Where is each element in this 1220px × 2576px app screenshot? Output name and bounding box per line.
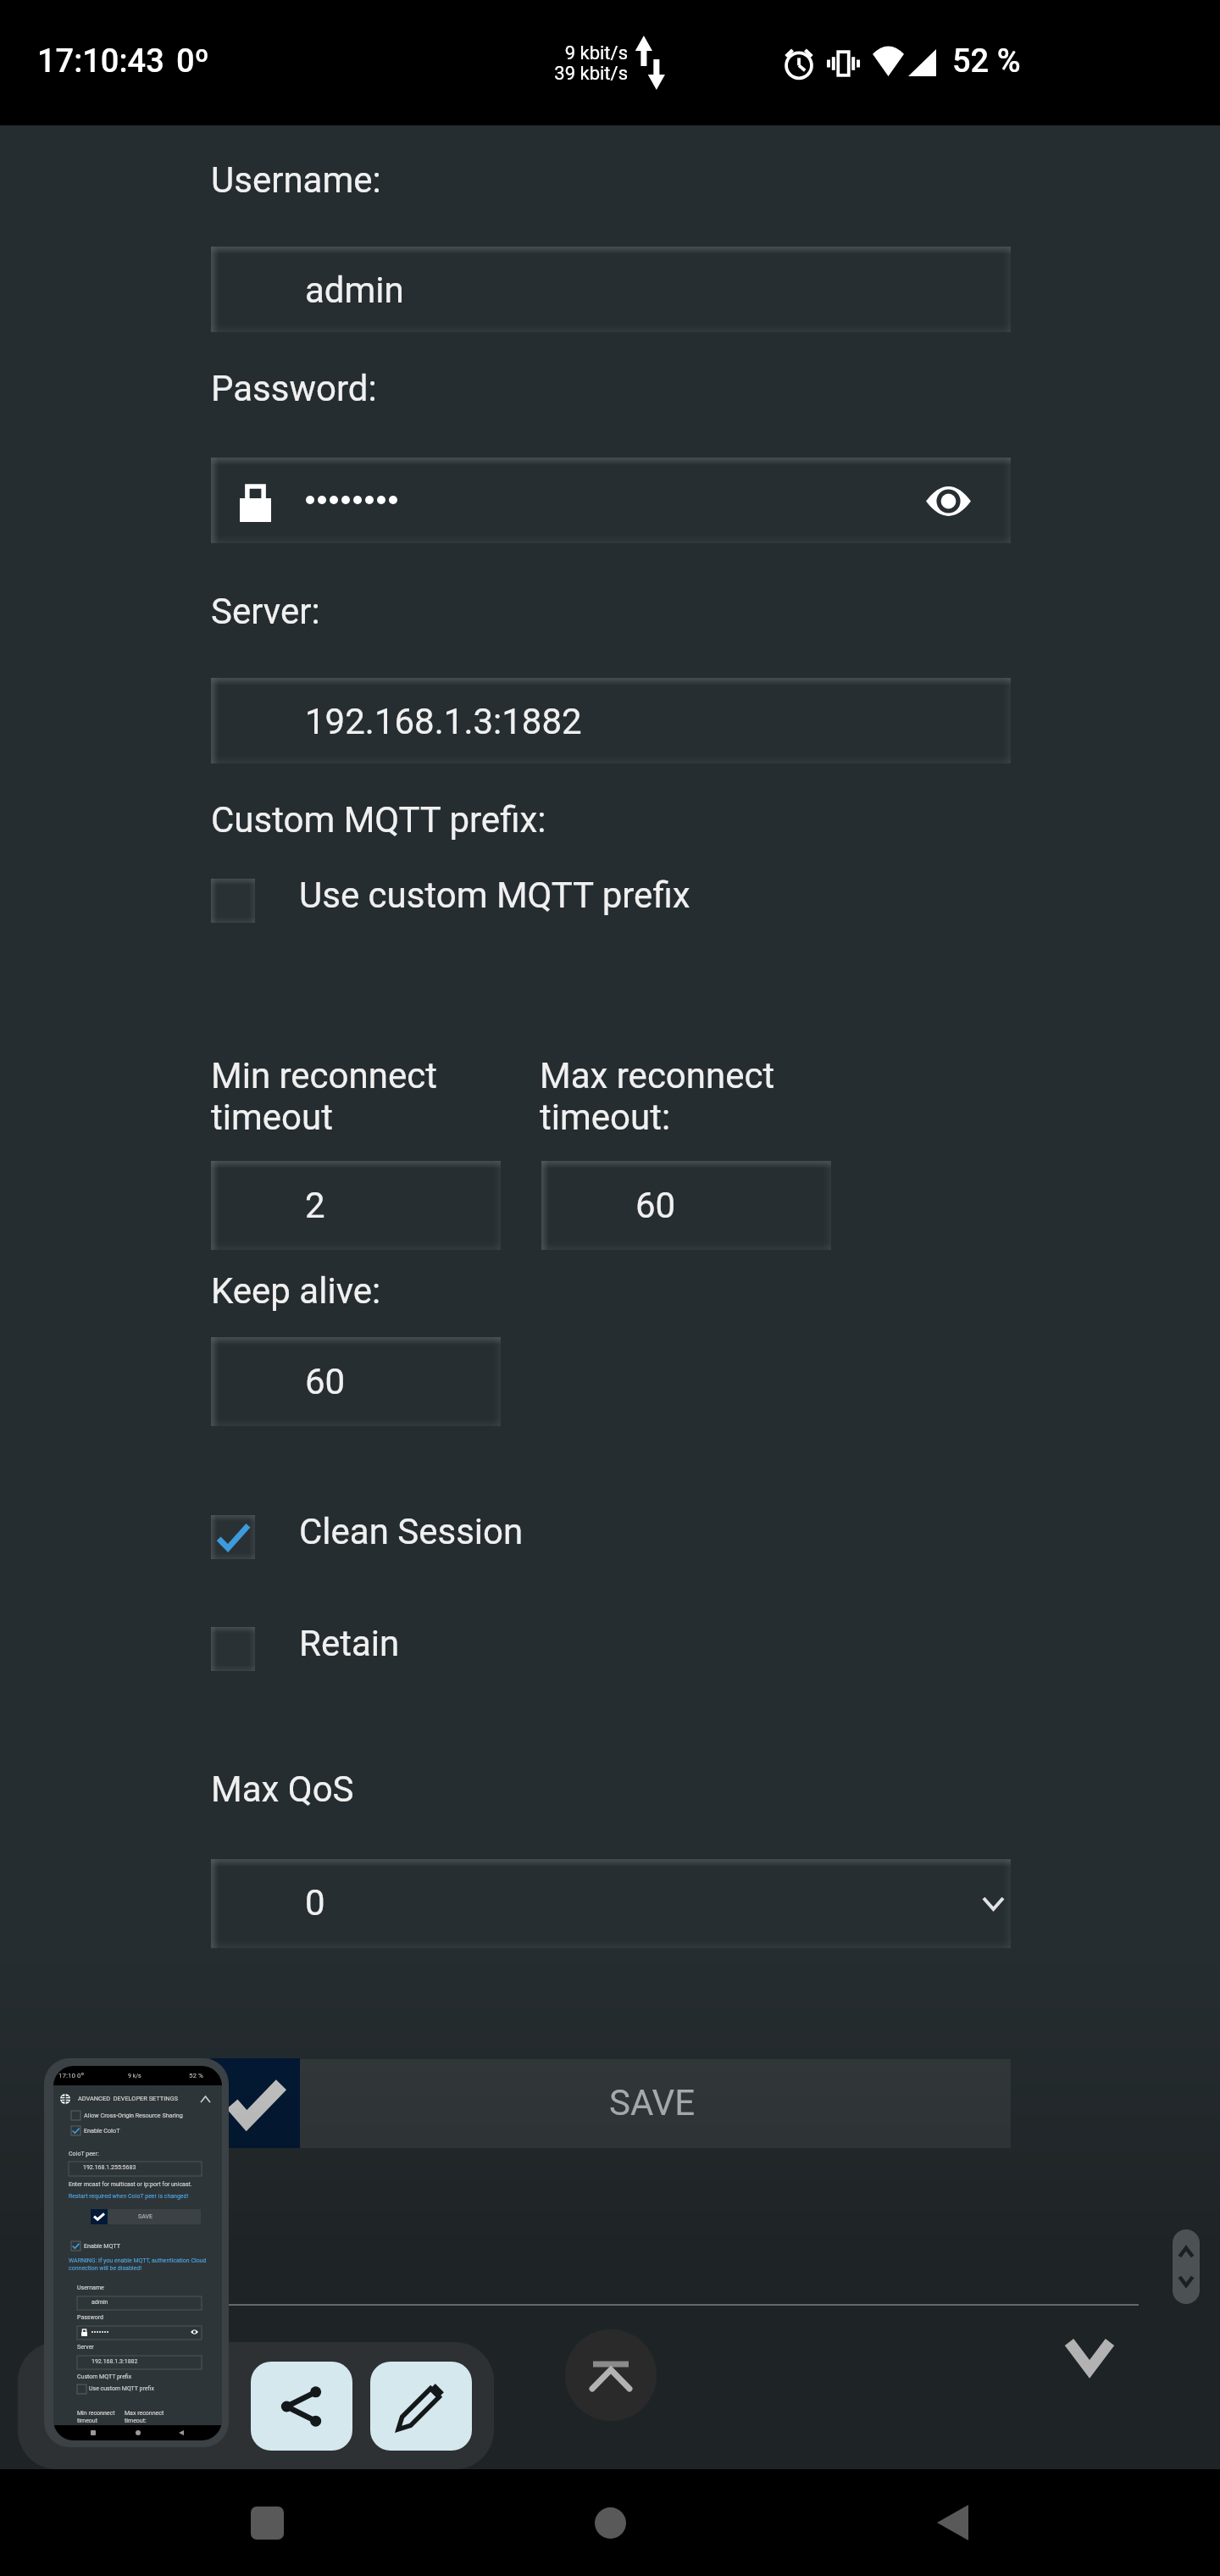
- button[interactable]: Collapse: [1051, 2326, 1128, 2385]
- staticText: ADVANCED DEVELOPER SETTINGS: [78, 2095, 178, 2102]
- staticText: 2: [305, 1185, 325, 1226]
- button[interactable]: Share: [251, 2362, 352, 2451]
- staticText: 17:10 0º: [58, 2072, 85, 2079]
- staticText: Enable CoIoT: [84, 2127, 120, 2134]
- staticText: 39 kbit/s: [542, 63, 628, 85]
- staticText: Use custom MQTT prefix: [299, 874, 690, 916]
- button[interactable]: 2: [211, 1161, 501, 1250]
- staticText: Max QoS: [211, 1768, 354, 1810]
- staticText: Username:: [211, 159, 381, 201]
- button[interactable]: 192.168.1.3:1882: [211, 678, 1011, 763]
- button[interactable]: Expand: [565, 2329, 657, 2421]
- staticText: Server:: [211, 591, 320, 632]
- staticText: 17:10:43: [37, 42, 164, 80]
- button[interactable]: 60: [211, 1337, 501, 1426]
- button[interactable]: Show password: [903, 471, 993, 530]
- staticText: 9 k/s: [128, 2073, 141, 2079]
- staticText: Enable MQTT: [84, 2242, 121, 2249]
- button[interactable]: Home: [559, 2484, 661, 2562]
- staticText: Retain: [299, 1623, 400, 1664]
- button[interactable]: Scroll up or down: [1173, 2229, 1200, 2304]
- button[interactable]: 0: [211, 1859, 1011, 1948]
- staticText: WARNING: If you enable MQTT, authenticat…: [69, 2257, 207, 2272]
- button[interactable]: SAVE: [211, 2059, 1011, 2148]
- staticText: SAVE: [609, 2082, 696, 2124]
- staticText: Enter mcast for multicast or ip:port for…: [69, 2181, 192, 2188]
- staticText: admin: [91, 2299, 108, 2306]
- staticText: 192.168.1.3:1882: [91, 2358, 138, 2365]
- staticText: Server: [77, 2344, 94, 2351]
- button[interactable]: Screenshot preview: [44, 2058, 229, 2447]
- staticText: 60: [305, 1361, 346, 1402]
- staticText: CoIoT peer:: [69, 2151, 99, 2157]
- button[interactable]: Retain: [211, 1627, 356, 1671]
- staticText: admin: [305, 269, 404, 311]
- staticText: 192.168.1.3:1882: [305, 701, 582, 742]
- button[interactable]: Use custom MQTT prefix: [211, 879, 646, 923]
- staticText: 0: [305, 1882, 325, 1924]
- staticText: Custom MQTT prefix:: [211, 799, 546, 841]
- staticText: Keep alive:: [211, 1270, 381, 1312]
- button[interactable]: 60: [541, 1161, 831, 1250]
- staticText: Password:: [211, 368, 377, 409]
- staticText: 192.168.1.255:5683: [83, 2164, 136, 2171]
- staticText: Clean Session: [299, 1511, 524, 1552]
- staticText: 60: [635, 1185, 676, 1226]
- button[interactable]: Edit: [370, 2362, 472, 2451]
- button[interactable]: Clean Session: [211, 1515, 480, 1559]
- staticText: Min reconnect timeout: [211, 1055, 437, 1138]
- staticText: 9 kbit/s: [542, 42, 628, 64]
- staticText: Username: [77, 2285, 104, 2291]
- staticText: SAVE: [138, 2213, 152, 2220]
- staticText: Custom MQTT prefix: [77, 2373, 132, 2380]
- staticText: Min reconnect timeout: [77, 2410, 115, 2424]
- staticText: Password: [77, 2314, 103, 2321]
- button[interactable]: admin: [211, 247, 1011, 332]
- button[interactable]: Recent apps: [216, 2484, 318, 2562]
- staticText: Max reconnect timeout:: [125, 2410, 164, 2424]
- staticText: CLEAR: [232, 2335, 341, 2377]
- staticText: 0º: [176, 42, 209, 80]
- button[interactable]: Back: [901, 2484, 1003, 2562]
- staticText: Max reconnect timeout:: [540, 1055, 775, 1138]
- staticText: Use custom MQTT prefix: [89, 2385, 154, 2392]
- staticText: Restart required when CoIoT peer is chan…: [69, 2193, 189, 2200]
- button[interactable]: Show password: [211, 458, 1011, 543]
- staticText: Allow Cross-Origin Resource Sharing: [84, 2112, 183, 2118]
- staticText: 52 %: [189, 2072, 203, 2079]
- staticText: 52 %: [952, 42, 1021, 80]
